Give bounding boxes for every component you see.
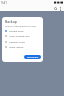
staticText: Backup xyxy=(5,19,17,24)
staticText: Select a destination for files xyxy=(5,24,36,27)
button[interactable]: Other device xyxy=(2,44,43,49)
button[interactable]: More options xyxy=(58,6,63,11)
button[interactable]: Network drive xyxy=(2,39,43,44)
staticText: Network drive xyxy=(9,40,25,43)
button[interactable]: Google Drive xyxy=(2,28,43,33)
button[interactable]: Local storage card xyxy=(2,33,43,38)
staticText: Google Drive xyxy=(9,29,24,32)
staticText: Other device xyxy=(9,45,24,48)
staticText: Local storage card xyxy=(9,34,30,37)
staticText: CONTINUE xyxy=(27,56,39,59)
staticText: 9:41 xyxy=(1,1,7,5)
button[interactable]: CONTINUE xyxy=(24,55,41,59)
button[interactable]: Search xyxy=(53,6,58,11)
